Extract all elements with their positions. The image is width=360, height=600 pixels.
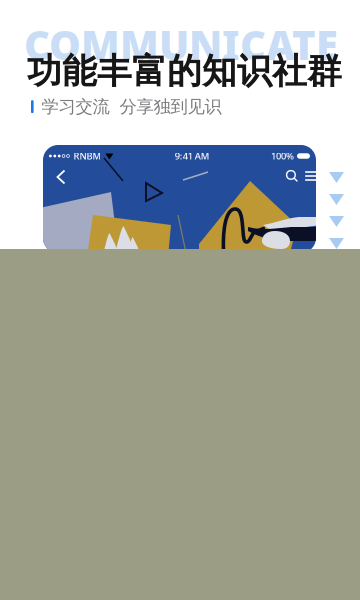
staticText: 9:41 AM xyxy=(175,150,210,162)
staticText: 100% xyxy=(271,150,294,162)
button[interactable]: Menu xyxy=(301,166,321,186)
button[interactable]: Search xyxy=(282,166,302,186)
button[interactable]: Back xyxy=(50,166,72,188)
staticText: COMMUNICATE xyxy=(24,18,338,71)
staticText: 功能丰富的知识社群 xyxy=(27,50,342,93)
staticText: RNBM xyxy=(73,150,101,162)
staticText: 学习交流 分享独到见识 xyxy=(42,96,222,117)
